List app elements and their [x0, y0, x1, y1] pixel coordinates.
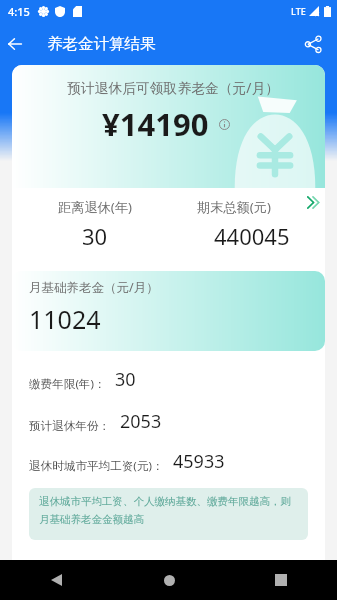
button[interactable]: More details: [300, 189, 325, 215]
button[interactable]: Recents: [225, 560, 337, 600]
button[interactable]: Info: [216, 116, 232, 132]
staticText: 月基础养老金（元/月）: [29, 279, 159, 296]
staticText: 预计退休年份：: [29, 419, 111, 434]
staticText: ¥14190: [102, 103, 209, 145]
staticText: 4:15: [8, 4, 30, 19]
staticText: 2053: [120, 409, 162, 434]
button[interactable]: 退休时城市平均工资(元)：: [29, 449, 325, 474]
staticText: 退休城市平均工资、个人缴纳基数、缴费年限越高，则月基础养老金金额越高: [39, 495, 298, 526]
staticText: 预计退休后可领取养老金（元/月）: [67, 78, 280, 97]
staticText: 期末总额(元): [197, 198, 271, 216]
staticText: 45933: [173, 449, 225, 474]
staticText: 30: [115, 367, 136, 392]
staticText: 养老金计算结果: [47, 34, 156, 54]
staticText: LTE: [291, 5, 306, 17]
staticText: 退休时城市平均工资(元)：: [29, 458, 164, 474]
button[interactable]: Home: [113, 560, 225, 600]
button[interactable]: 缴费年限(年)：: [29, 367, 325, 392]
staticText: 缴费年限(年)：: [29, 376, 106, 392]
button[interactable]: 预计退休年份：: [29, 409, 325, 434]
button[interactable]: 月基础养老金（元/月）: [12, 271, 325, 351]
staticText: 11024: [29, 302, 101, 336]
staticText: 440045: [214, 221, 290, 251]
staticText: 30: [82, 221, 108, 251]
button[interactable]: Back: [0, 560, 113, 600]
button[interactable]: Share: [295, 26, 331, 62]
staticText: 距离退休(年): [58, 198, 132, 216]
button[interactable]: Back: [0, 29, 30, 59]
